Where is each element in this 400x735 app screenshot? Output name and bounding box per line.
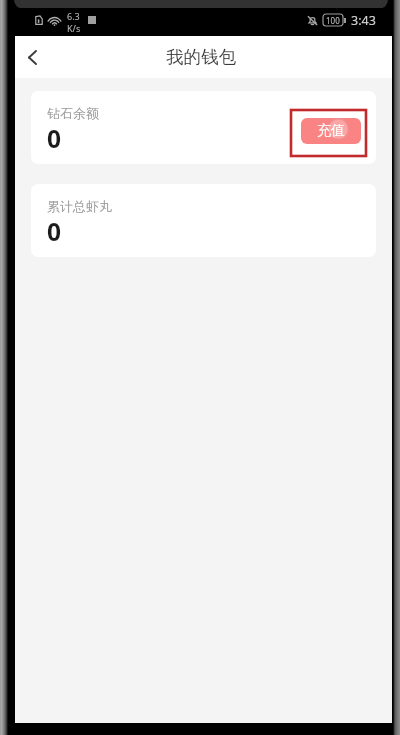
staticText: 6.3	[67, 10, 80, 22]
button[interactable]: 充值	[301, 118, 361, 144]
staticText: 钻石余额	[47, 105, 99, 121]
staticText: 100	[326, 15, 340, 26]
staticText: 3:43	[351, 12, 376, 29]
staticText: 0	[47, 122, 62, 155]
staticText: 我的钱包	[166, 46, 236, 68]
staticText: 累计总虾丸	[47, 198, 112, 214]
button[interactable]: Back	[15, 36, 49, 78]
staticText: 0	[47, 215, 62, 248]
staticText: K/s	[67, 22, 81, 34]
staticText: 充值	[317, 122, 345, 140]
